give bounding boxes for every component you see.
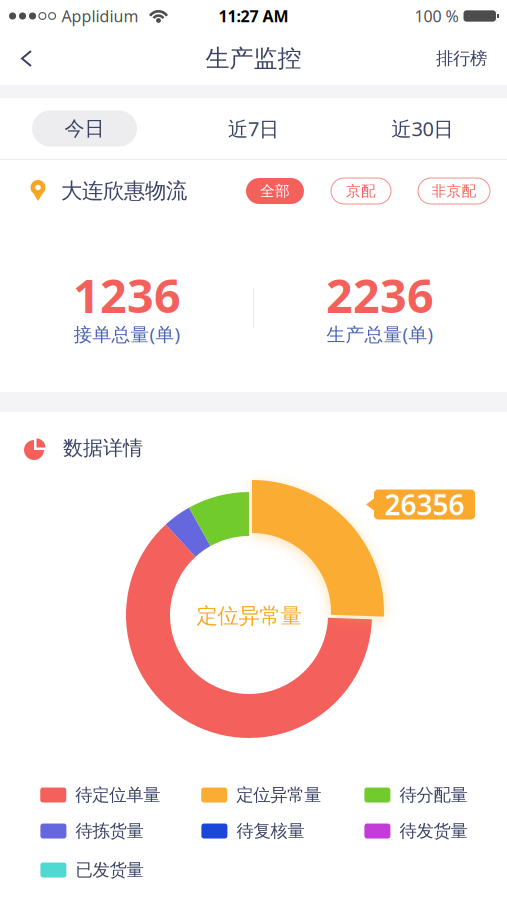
staticText: 非京配: [431, 182, 476, 200]
staticText: 定位异常量: [236, 784, 321, 806]
button[interactable]: 京配: [331, 178, 391, 204]
button[interactable]: 排行榜: [436, 38, 507, 79]
staticText: 生产总量(单): [326, 322, 433, 346]
staticText: 待分配量: [399, 784, 467, 806]
staticText: 已发货量: [75, 859, 143, 881]
staticText: 生产监控: [205, 44, 301, 73]
staticText: 待定位单量: [75, 784, 160, 806]
staticText: 数据详情: [63, 436, 143, 460]
staticText: 1236: [73, 264, 181, 326]
staticText: 26356: [384, 486, 464, 523]
button[interactable]: 近30日: [370, 110, 475, 146]
staticText: 待拣货量: [75, 820, 143, 842]
staticText: Applidium: [61, 5, 138, 27]
staticText: 待发货量: [399, 820, 467, 842]
button[interactable]: 全部: [246, 178, 304, 204]
button[interactable]: Back: [0, 40, 33, 77]
staticText: 近30日: [391, 115, 453, 142]
staticText: 定位异常量: [196, 603, 301, 629]
staticText: 今日: [64, 116, 104, 141]
staticText: 11:27 AM: [218, 5, 288, 27]
button[interactable]: 今日: [32, 110, 137, 146]
staticText: 2236: [326, 264, 434, 326]
staticText: 待复核量: [236, 820, 304, 842]
staticText: 接单总量(单): [73, 322, 180, 346]
staticText: 近7日: [228, 115, 279, 142]
staticText: 全部: [260, 182, 290, 200]
staticText: 大连欣惠物流: [61, 178, 187, 204]
button[interactable]: 非京配: [418, 178, 490, 204]
staticText: 京配: [346, 182, 376, 200]
staticText: 100 %: [414, 5, 458, 27]
button[interactable]: 近7日: [201, 110, 306, 146]
staticText: 排行榜: [436, 48, 487, 69]
